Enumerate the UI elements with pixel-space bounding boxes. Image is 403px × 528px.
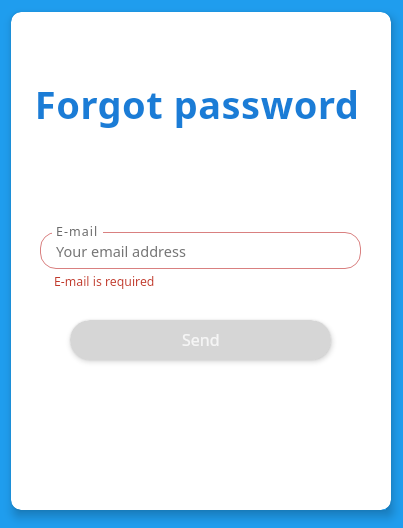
button[interactable]: Send	[70, 320, 331, 360]
staticText: E-mail is required	[54, 273, 155, 290]
staticText: Your email address	[56, 241, 186, 261]
staticText: Forgot password	[11, 78, 387, 130]
staticText: Send	[182, 329, 220, 351]
button[interactable]: Your email address	[40, 232, 361, 269]
staticText: E-mail	[56, 223, 99, 240]
